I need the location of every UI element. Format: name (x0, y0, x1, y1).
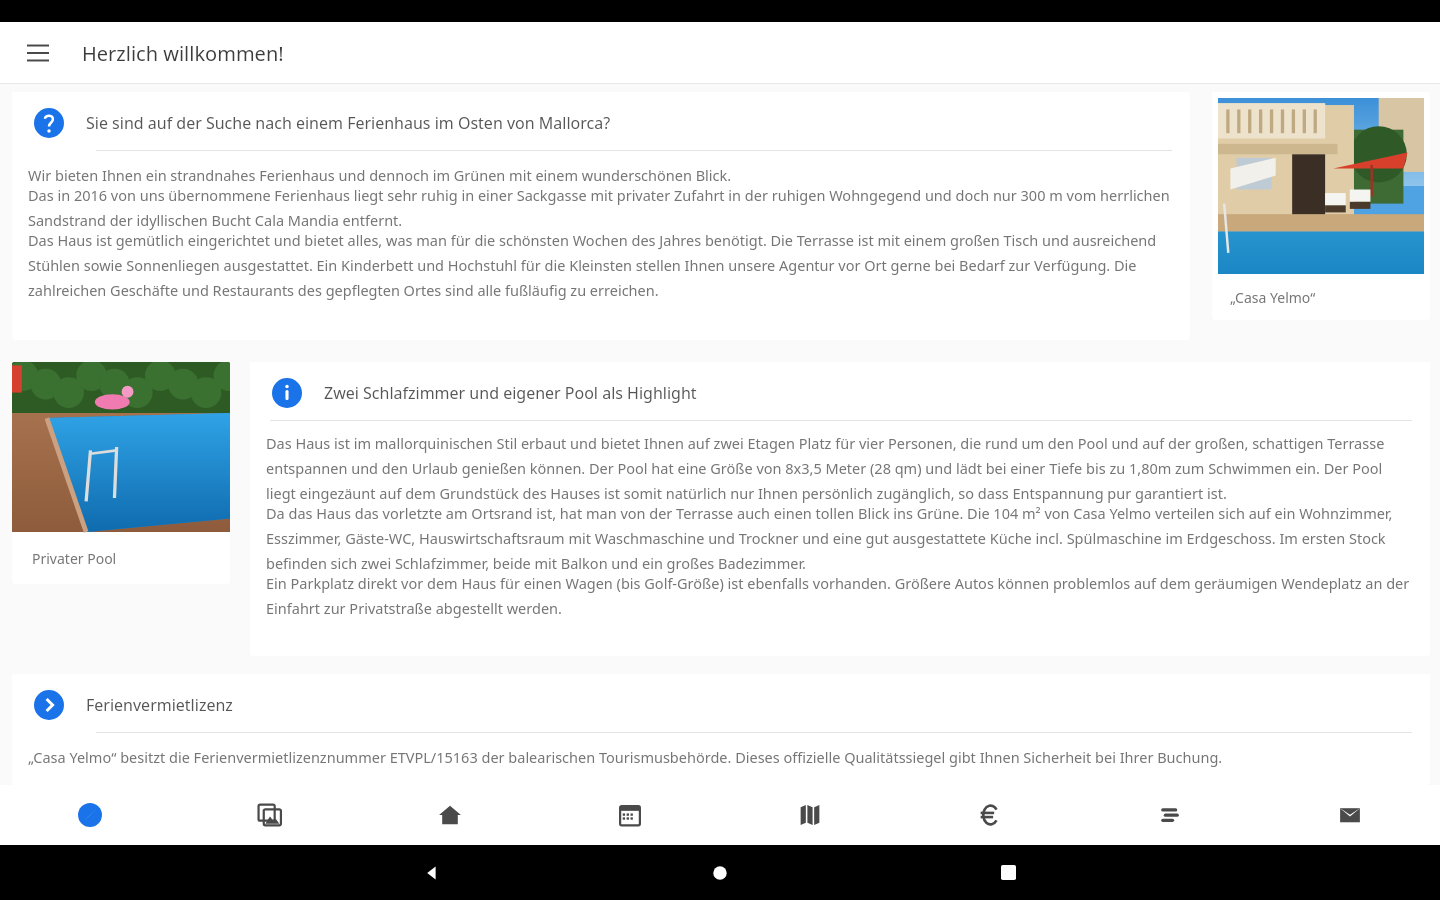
button[interactable]: Zwei Schlafzimmer und eigener Pool als H… (250, 362, 1430, 420)
staticText: „Casa Yelmo“ (1230, 288, 1316, 307)
staticText: Das in 2016 von uns übernommene Ferienha… (28, 185, 1174, 230)
staticText: Privater Pool (32, 549, 117, 568)
staticText: Wir bieten Ihnen ein strandnahes Ferienh… (28, 165, 732, 185)
staticText: Da das Haus das vorletzte am Ortsrand is… (266, 503, 1414, 573)
button[interactable]: Entdecken (0, 785, 180, 845)
button[interactable]: Sie sind auf der Suche nach einem Ferien… (12, 92, 1190, 150)
staticText: Das Haus ist im mallorquinischen Stil er… (266, 433, 1414, 503)
staticText: Das Haus ist gemütlich eingerichtet und … (28, 230, 1174, 300)
staticText: Sie sind auf der Suche nach einem Ferien… (86, 112, 611, 134)
button[interactable]: Kontakt (1260, 785, 1440, 845)
button[interactable]: Fotos (180, 785, 360, 845)
staticText: „Casa Yelmo“ besitzt die Ferienvermietli… (28, 747, 1223, 767)
button[interactable]: Haus (360, 785, 540, 845)
staticText: Zwei Schlafzimmer und eigener Pool als H… (324, 382, 697, 404)
staticText: Ferienvermietlizenz (86, 694, 233, 716)
button[interactable]: Ferienvermietlizenz (12, 674, 1430, 732)
staticText: Herzlich willkommen! (82, 40, 284, 67)
button[interactable]: Kalender (540, 785, 720, 845)
button[interactable]: Preise (900, 785, 1080, 845)
button[interactable]: Karte (720, 785, 900, 845)
button[interactable]: Einstellungen (1080, 785, 1260, 845)
staticText: Ein Parkplatz direkt vor dem Haus für ei… (266, 573, 1414, 618)
button[interactable]: Menü öffnen (16, 31, 60, 75)
button[interactable]: Übersicht (864, 845, 1152, 900)
button[interactable]: Zurück (288, 845, 576, 900)
button[interactable]: Startbildschirm (576, 845, 864, 900)
